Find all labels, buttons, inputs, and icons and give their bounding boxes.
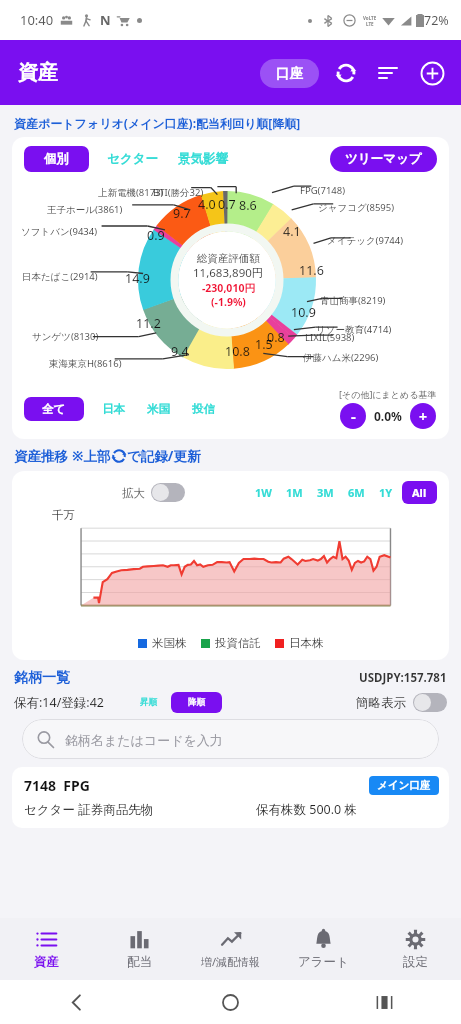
staticText: 7148 FPG [24, 776, 90, 795]
staticText: BTI(勝分32) [153, 186, 204, 199]
staticText: 上新電機(8173) [98, 186, 164, 199]
staticText: 東海東京H(8616) [49, 357, 122, 370]
staticText: 設定 [403, 954, 428, 970]
staticText: 3M [317, 485, 334, 500]
staticText: 拡大 [122, 486, 145, 500]
staticText: 8.6 [239, 197, 257, 214]
staticText: 口座 [276, 65, 303, 82]
button[interactable]: ツリーマップ [330, 146, 437, 172]
button[interactable]: Decrease [340, 403, 366, 429]
staticText: 個別 [44, 151, 69, 167]
staticText: 1Y [379, 485, 393, 500]
staticText: ツリーマップ [345, 151, 422, 167]
button[interactable]: 配当 [93, 918, 185, 980]
button[interactable]: 降順 [171, 692, 222, 713]
button[interactable]: 昇順 [136, 693, 161, 712]
staticText: 投信 [192, 402, 215, 416]
button[interactable]: 投信 [186, 396, 221, 422]
staticText: 0.0% [374, 408, 402, 424]
button[interactable]: Add [417, 58, 447, 88]
button[interactable]: 1W [250, 481, 277, 504]
button[interactable]: メイン口座 [369, 776, 439, 795]
staticText: 0.8 [267, 329, 285, 346]
staticText: 72% [424, 12, 449, 29]
button[interactable]: 6M [343, 481, 370, 504]
staticText: LIXIL(5938) [305, 331, 355, 344]
staticText: 青山商事(8219) [320, 294, 386, 307]
staticText: 配当 [127, 954, 152, 970]
button[interactable]: All [402, 481, 437, 504]
staticText: 1W [255, 485, 272, 500]
staticText: 昇順 [140, 697, 157, 708]
staticText: 1.5 [255, 336, 273, 353]
staticText: 王子ホール(3861) [47, 203, 123, 216]
staticText: 4.0 [198, 196, 216, 213]
button[interactable]: 資産 [0, 918, 93, 980]
button[interactable]: Simple display toggle [413, 693, 447, 712]
staticText: 資産 [34, 954, 59, 970]
staticText: 11.6 [299, 262, 324, 279]
staticText: 0.9 [147, 227, 165, 244]
button[interactable]: 増/減配情報 [185, 918, 277, 980]
staticText: 簡略表示 [356, 695, 406, 711]
staticText: 資産推移 [14, 447, 72, 465]
staticText: セクター [107, 151, 158, 167]
staticText: 投資信託 [215, 636, 261, 650]
staticText: FPG(7148) [300, 184, 346, 197]
staticText: 千万 [52, 508, 75, 522]
button[interactable]: 全て [24, 397, 84, 421]
staticText: 増/減配情報 [201, 954, 261, 969]
staticText: VoLTE [363, 15, 377, 21]
staticText: 10.8 [225, 343, 250, 360]
button[interactable]: 米国 [141, 396, 176, 422]
button[interactable]: Sort [373, 58, 403, 88]
staticText: 保有株数 500.0 株 [256, 801, 357, 818]
staticText: + [419, 407, 428, 426]
staticText: 10.9 [291, 304, 316, 321]
button[interactable]: 設定 [369, 918, 461, 980]
staticText: アラート [298, 954, 349, 970]
staticText: 景気影響 [178, 151, 228, 167]
staticText: ソフトバン(9434) [21, 225, 98, 238]
button[interactable]: 個別 [24, 146, 89, 172]
button[interactable]: 1M [281, 481, 308, 504]
staticText: 全て [42, 402, 66, 416]
button[interactable]: 景気影響 [172, 146, 234, 172]
staticText: リソー教育(4714) [316, 323, 392, 336]
staticText: ジャフコグ(8595) [318, 201, 395, 214]
button[interactable]: Refresh [331, 58, 361, 88]
button[interactable]: 銘柄名またはコードを入力 [22, 719, 439, 759]
button[interactable]: 3M [312, 481, 339, 504]
staticText: セクター 証券商品先物 [24, 801, 154, 818]
staticText: 資産ポートフォリオ(メイン口座):配当利回り順[降順] [14, 115, 301, 131]
staticText: 4.1 [283, 223, 301, 240]
staticText: USDJPY:157.781 [359, 670, 447, 686]
button[interactable]: 口座 [260, 59, 319, 88]
staticText: メイン口座 [377, 779, 431, 792]
staticText: 6M [348, 485, 365, 500]
staticText: 米国 [147, 402, 170, 416]
staticText: 0.7 [218, 196, 236, 213]
staticText: 14.9 [125, 270, 150, 287]
staticText: 9.7 [173, 205, 191, 222]
staticText: 1M [286, 485, 303, 500]
staticText: 総資産評価額 [197, 252, 260, 265]
staticText: で記録/更新 [127, 447, 201, 465]
staticText: LTE [366, 21, 374, 27]
staticText: 日本 [102, 402, 125, 416]
staticText: メイテック(9744) [327, 234, 404, 247]
staticText: 11,683,890円 [193, 265, 264, 281]
staticText: [その他]にまとめる基準 [339, 388, 437, 400]
staticText: 日本たばこ(2914) [22, 270, 98, 283]
button[interactable]: セクター [101, 146, 164, 172]
button[interactable]: Increase [410, 403, 436, 429]
button[interactable]: 1Y [374, 481, 398, 504]
button[interactable]: アラート [277, 918, 369, 980]
staticText: ※上部 [72, 447, 111, 465]
button[interactable]: Zoom toggle [151, 483, 185, 502]
button[interactable]: 日本 [96, 396, 131, 422]
staticText: 降順 [188, 697, 205, 708]
staticText: 10:40 [20, 11, 54, 29]
staticText: 銘柄名またはコードを入力 [65, 732, 223, 748]
staticText: 9.4 [171, 343, 189, 360]
